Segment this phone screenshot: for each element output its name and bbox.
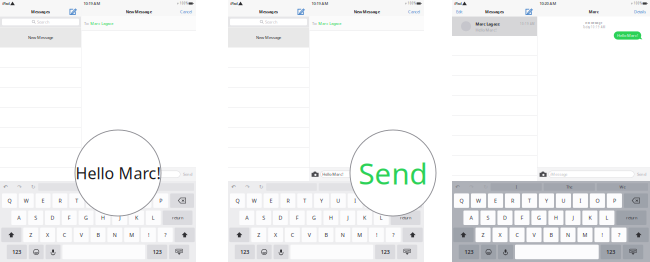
button[interactable]: Send [636, 171, 648, 177]
button[interactable] [46, 245, 60, 259]
button[interactable]: V [74, 228, 89, 242]
button[interactable]: F [290, 210, 305, 225]
button[interactable]: Y [539, 193, 554, 208]
button[interactable]: R [52, 193, 67, 208]
button[interactable]: F [62, 210, 77, 225]
button[interactable]: X [40, 228, 55, 242]
button[interactable]: S [480, 210, 495, 225]
button[interactable]: A [463, 210, 478, 225]
button[interactable]: N [335, 228, 350, 242]
button[interactable]: P [607, 193, 622, 208]
button[interactable]: A [11, 210, 26, 225]
button[interactable]: G [307, 210, 321, 225]
button[interactable]: C [509, 228, 525, 242]
button[interactable]: ? [611, 228, 626, 242]
button[interactable]: Send [182, 171, 194, 177]
button[interactable]: return [616, 210, 646, 225]
button[interactable]: 123 [601, 245, 621, 259]
button[interactable]: L [146, 210, 161, 225]
button[interactable]: return [163, 210, 192, 225]
button[interactable]: S [28, 210, 43, 225]
button[interactable]: Cancel [178, 7, 193, 16]
button[interactable]: Q [454, 193, 469, 208]
button[interactable]: O [136, 193, 151, 208]
button[interactable] [623, 245, 643, 259]
button[interactable] [403, 228, 423, 242]
button[interactable] [398, 193, 422, 208]
button[interactable]: C [57, 228, 72, 242]
button[interactable] [274, 245, 288, 259]
button[interactable]: X [492, 228, 508, 242]
button[interactable]: D [497, 210, 512, 225]
button[interactable]: L [374, 210, 389, 225]
button[interactable]: W [19, 193, 34, 208]
button[interactable] [257, 245, 272, 259]
button[interactable]: F [514, 210, 529, 225]
button[interactable] [624, 193, 648, 208]
button[interactable]: New Message [524, 7, 534, 16]
button[interactable]: T [522, 193, 537, 208]
button[interactable]: D [273, 210, 288, 225]
button[interactable]: K [357, 210, 372, 225]
button[interactable]: Z [251, 228, 266, 242]
button[interactable]: Y [314, 193, 329, 208]
button[interactable] [453, 228, 474, 242]
button[interactable] [29, 245, 44, 259]
button[interactable] [170, 193, 194, 208]
button[interactable]: A [239, 210, 254, 225]
button[interactable]: Y [86, 193, 101, 208]
button[interactable]: W [247, 193, 262, 208]
button[interactable]: Q [2, 193, 17, 208]
button[interactable]: The [544, 183, 595, 191]
button[interactable]: Camera [540, 171, 547, 177]
button[interactable]: N [560, 228, 575, 242]
button[interactable]: I [491, 183, 542, 191]
button[interactable]: O [364, 193, 379, 208]
button[interactable]: E [488, 193, 503, 208]
button[interactable] [498, 245, 513, 259]
button[interactable]: Edit [454, 7, 464, 16]
button[interactable]: Marc Lagace [452, 16, 537, 36]
button[interactable]: 123 [459, 245, 479, 259]
button[interactable]: We [597, 183, 648, 191]
button[interactable]: 123 [235, 245, 255, 259]
button[interactable]: ! [369, 228, 384, 242]
button[interactable] [397, 245, 417, 259]
button[interactable]: L [599, 210, 614, 225]
button[interactable]: 123 [147, 245, 167, 259]
button[interactable]: Cancel [406, 7, 421, 16]
button[interactable]: U [556, 193, 571, 208]
button[interactable]: K [582, 210, 597, 225]
button[interactable]: X [268, 228, 283, 242]
button[interactable]: M [124, 228, 139, 242]
button[interactable]: Details [632, 7, 647, 16]
button[interactable]: N [107, 228, 122, 242]
button[interactable]: Z [23, 228, 38, 242]
button[interactable] [628, 228, 649, 242]
button[interactable]: 123 [375, 245, 395, 259]
button[interactable]: R [505, 193, 520, 208]
button[interactable] [175, 228, 195, 242]
button[interactable] [143, 183, 194, 191]
button[interactable] [481, 245, 496, 259]
button[interactable]: U [331, 193, 346, 208]
button[interactable]: I [573, 193, 588, 208]
button[interactable]: B [543, 228, 559, 242]
button[interactable]: M [577, 228, 592, 242]
button[interactable] [169, 245, 189, 259]
button[interactable]: J [565, 210, 580, 225]
button[interactable] [319, 183, 369, 191]
button[interactable]: S [256, 210, 271, 225]
button[interactable] [229, 228, 249, 242]
button[interactable]: B [90, 228, 105, 242]
button[interactable]: W [471, 193, 486, 208]
button[interactable]: H [323, 210, 338, 225]
